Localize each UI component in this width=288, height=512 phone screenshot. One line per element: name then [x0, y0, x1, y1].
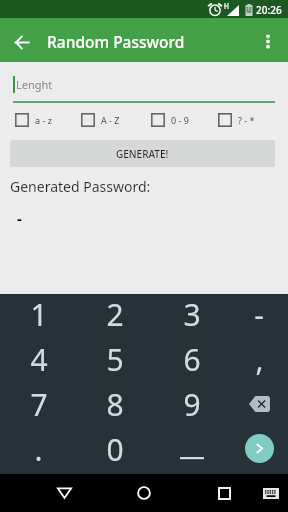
staticText: 9 [183, 384, 201, 425]
button[interactable]: 0 [77, 429, 153, 474]
button[interactable]: 0 - 9 [151, 111, 189, 129]
button[interactable]: A - Z [81, 111, 120, 129]
other: Backspace [249, 396, 270, 412]
button[interactable]: Backspace [230, 384, 288, 429]
staticText: - [17, 208, 22, 228]
staticText: - [254, 294, 264, 335]
staticText: GENERATE! [116, 147, 169, 161]
staticText: 1 [30, 294, 48, 335]
button[interactable]: - [230, 294, 288, 339]
button[interactable]: a - z [15, 111, 52, 129]
button[interactable]: Back [7, 27, 37, 57]
staticText: ? - * [238, 114, 255, 126]
button[interactable] [153, 429, 230, 474]
staticText: 5 [106, 339, 124, 380]
button[interactable]: 4 [0, 339, 77, 384]
staticText: 0 - 9 [171, 114, 189, 126]
staticText: Lenght [16, 77, 53, 92]
button[interactable]: More options [253, 26, 283, 56]
button[interactable]: 3 [153, 294, 230, 339]
staticText: 4 [30, 339, 48, 380]
button[interactable]: Enter [230, 429, 288, 474]
button[interactable]: 1 [0, 294, 77, 339]
staticText: a - z [35, 114, 52, 126]
button[interactable]: 7 [0, 384, 77, 429]
staticText: 0 [106, 429, 124, 470]
button[interactable]: 5 [77, 339, 153, 384]
button[interactable]: GENERATE! [10, 140, 275, 167]
button[interactable]: , [230, 339, 288, 384]
staticText: 6 [183, 339, 201, 380]
button[interactable]: 2 [77, 294, 153, 339]
staticText: 20:26 [256, 3, 282, 17]
button[interactable]: Back [44, 474, 84, 512]
staticText: 2 [106, 294, 124, 335]
staticText: 8 [106, 384, 124, 425]
button[interactable]: 6 [153, 339, 230, 384]
button[interactable]: 8 [77, 384, 153, 429]
button[interactable]: Recents [204, 474, 244, 512]
staticText: 7 [30, 384, 48, 425]
staticText: . [34, 429, 43, 470]
button[interactable]: Change keyboard [253, 474, 288, 512]
button[interactable]: ? - * [218, 111, 255, 129]
button[interactable]: Enter [245, 434, 274, 463]
button[interactable]: 9 [153, 384, 230, 429]
staticText: , [255, 339, 264, 380]
staticText: Random Password [47, 31, 185, 52]
staticText: 3 [183, 294, 201, 335]
button[interactable]: . [0, 429, 77, 474]
button[interactable]: Home [124, 474, 164, 512]
staticText: A - Z [101, 114, 120, 126]
staticText: Generated Password: [10, 177, 151, 196]
